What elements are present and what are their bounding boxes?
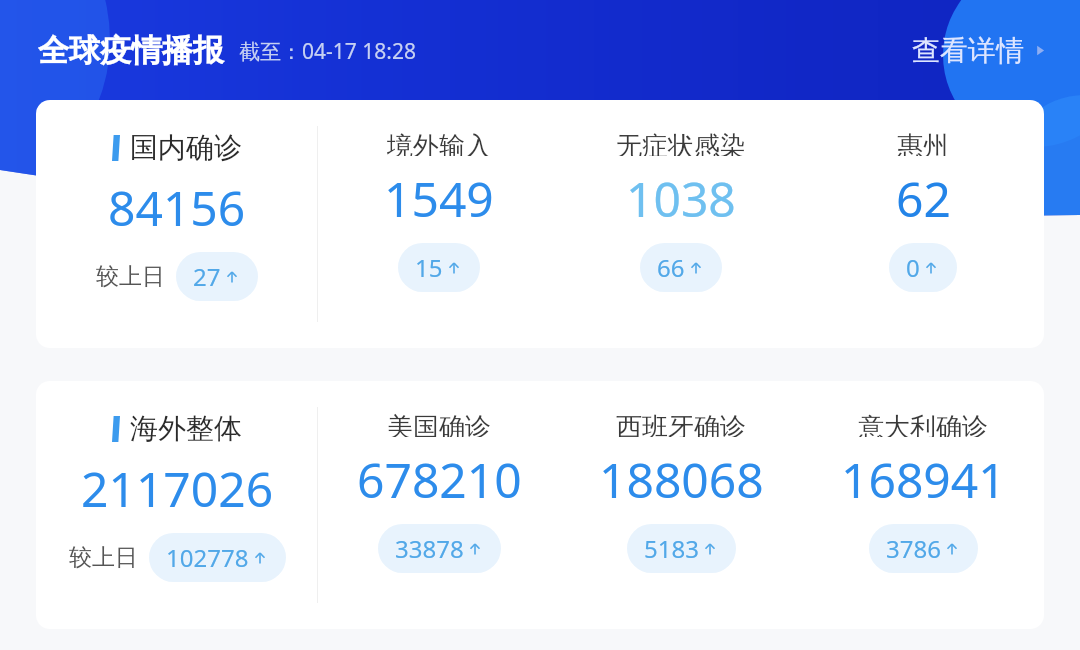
staticText: 5183 [644,532,699,565]
staticText: 84156 [108,175,246,240]
staticText: 较上日 [96,262,165,291]
staticText: 全球疫情播报 [38,31,224,70]
staticText: 无症状感染 [616,130,746,156]
staticText: 境外输入 [387,130,491,156]
button[interactable]: 查看详情 [906,25,1054,76]
staticText: 2117026 [81,456,274,521]
staticText: 较上日 [69,543,138,572]
staticText: 0 [906,251,920,284]
staticText: 国内确诊 [130,130,242,165]
staticText: 意大利确诊 [858,411,988,437]
staticText: 66 [657,251,685,284]
staticText: 33878 [395,532,464,565]
button[interactable]: 国内确诊 [36,100,1044,348]
button[interactable]: 意大利确诊 [802,411,1044,629]
staticText: 海外整体 [130,411,242,446]
button[interactable]: 西班牙确诊 [560,411,802,629]
staticText: 惠州 [897,130,949,156]
staticText: 3786 [886,532,941,565]
staticText: 678210 [357,447,522,512]
button[interactable]: 无症状感染 [560,130,802,348]
staticText: 15 [415,251,443,284]
staticText: 188068 [599,447,764,512]
other: View details [1033,43,1048,58]
staticText: 168941 [841,447,1006,512]
button[interactable]: 海外整体 [36,381,1044,629]
staticText: 西班牙确诊 [616,411,746,437]
staticText: 截至：04-17 18:28 [239,37,416,66]
button[interactable]: 境外输入 [318,130,560,348]
staticText: 62 [896,166,951,231]
button[interactable]: 惠州 [802,130,1044,348]
staticText: 查看详情 [912,33,1024,68]
staticText: 102778 [166,541,249,574]
staticText: 1549 [384,166,494,231]
staticText: 27 [193,260,221,293]
button[interactable]: 美国确诊 [318,411,560,629]
staticText: 美国确诊 [387,411,491,437]
staticText: 1038 [626,166,736,231]
